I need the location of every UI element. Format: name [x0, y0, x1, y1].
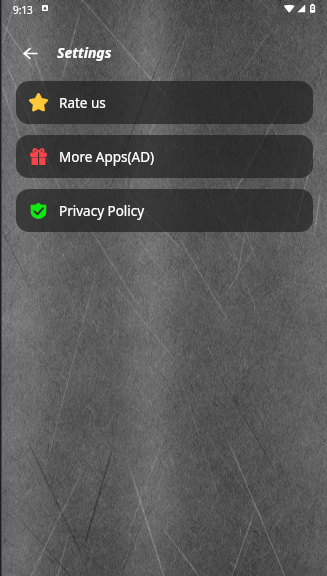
staticText: Privacy Policy — [59, 202, 145, 220]
staticText: Rate us — [59, 94, 106, 112]
staticText: More Apps(AD) — [59, 148, 155, 166]
button[interactable]: Rate us — [16, 81, 313, 124]
button[interactable]: More Apps(AD) — [16, 135, 313, 178]
staticText: Settings — [57, 43, 112, 62]
button[interactable]: Privacy Policy — [16, 189, 313, 232]
staticText: 9:13 — [13, 3, 33, 17]
button[interactable]: Back — [13, 36, 48, 71]
